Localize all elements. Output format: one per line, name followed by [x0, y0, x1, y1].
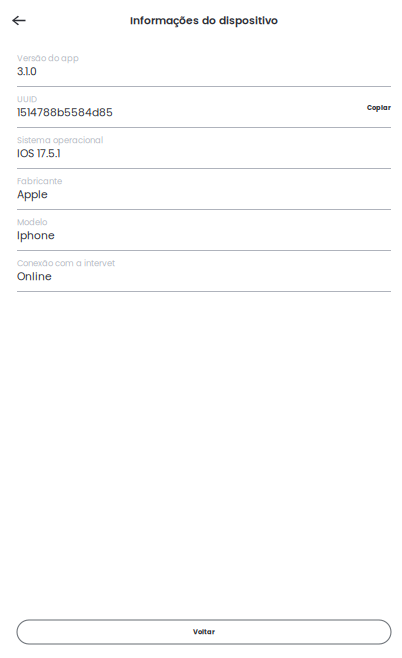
button[interactable]: Copiar	[357, 99, 391, 116]
staticText: UUID	[17, 93, 37, 105]
staticText: 1514788b5584d85	[17, 105, 113, 120]
staticText: IOS 17.5.1	[17, 146, 60, 161]
staticText: Conexão com a intervet	[17, 257, 115, 269]
button[interactable]: Voltar	[17, 620, 391, 644]
staticText: Informações do dispositivo	[130, 13, 278, 28]
staticText: Apple	[17, 187, 48, 202]
staticText: Sistema operacional	[17, 134, 103, 146]
button[interactable]: Voltar	[0, 8, 35, 33]
staticText: Modelo	[17, 216, 47, 228]
staticText: Fabricante	[17, 175, 62, 187]
staticText: Online	[17, 269, 52, 284]
staticText: Versão do app	[17, 52, 79, 64]
staticText: 3.1.0	[17, 64, 37, 79]
staticText: Voltar	[193, 627, 215, 637]
staticText: Iphone	[17, 228, 55, 243]
staticText: Copiar	[367, 103, 391, 112]
